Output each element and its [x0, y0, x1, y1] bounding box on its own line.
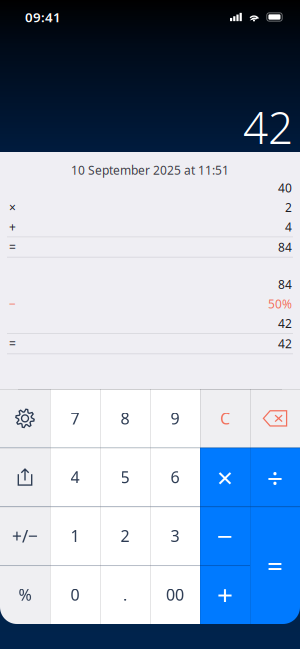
staticText: 4 — [285, 219, 292, 235]
staticText: 09:41 — [25, 8, 61, 26]
button[interactable]: 2 — [100, 506, 150, 565]
button[interactable]: 4 — [50, 448, 100, 507]
button[interactable]: . — [100, 565, 150, 624]
staticText: 8 — [120, 408, 129, 429]
staticText: 5 — [120, 466, 129, 488]
button[interactable]: 9 — [150, 389, 200, 448]
button[interactable]: % — [0, 565, 50, 624]
button[interactable]: + — [200, 565, 250, 624]
staticText: = — [9, 336, 16, 352]
staticText: 9 — [170, 408, 179, 429]
staticText: 84 — [278, 276, 292, 292]
button[interactable]: 5 — [100, 448, 150, 507]
button[interactable]: 00 — [150, 565, 200, 624]
staticText: +/− — [12, 524, 38, 547]
staticText: 4 — [70, 466, 79, 488]
staticText: 42 — [278, 336, 292, 352]
staticText: 0 — [70, 584, 79, 605]
staticText: 40 — [278, 180, 292, 196]
button[interactable]: ÷ — [250, 448, 300, 507]
staticText: 10 September 2025 at 11:51 — [71, 162, 229, 178]
staticText: = — [9, 239, 16, 255]
staticText: 00 — [166, 584, 184, 605]
button[interactable]: = — [250, 506, 300, 624]
staticText: × — [9, 199, 16, 215]
staticText: ÷ — [267, 458, 283, 496]
staticText: 7 — [70, 408, 79, 429]
staticText: % — [18, 584, 31, 605]
button[interactable] — [0, 448, 50, 507]
staticText: − — [9, 296, 16, 312]
staticText: 3 — [170, 525, 179, 546]
button[interactable]: 7 — [50, 389, 100, 448]
staticText: 42 — [243, 98, 293, 156]
button[interactable]: 8 — [100, 389, 150, 448]
staticText: 84 — [278, 239, 292, 255]
staticText: . — [123, 584, 127, 605]
staticText: C — [220, 408, 230, 429]
staticText: 2 — [120, 525, 129, 546]
staticText: 6 — [170, 466, 179, 488]
button[interactable]: × — [200, 448, 250, 507]
staticText: 2 — [285, 199, 292, 215]
button[interactable]: 3 — [150, 506, 200, 565]
staticText: × — [217, 458, 233, 496]
staticText: + — [9, 219, 16, 235]
staticText: 50% — [268, 296, 292, 312]
staticText: + — [217, 576, 233, 613]
staticText: 42 — [278, 315, 292, 331]
button[interactable]: 0 — [50, 565, 100, 624]
button[interactable] — [0, 389, 50, 448]
staticText: 1 — [70, 525, 79, 546]
button[interactable] — [250, 389, 300, 448]
button[interactable]: +/− — [0, 506, 50, 565]
button[interactable]: 1 — [50, 506, 100, 565]
button[interactable]: 6 — [150, 448, 200, 507]
button[interactable]: C — [200, 389, 250, 448]
staticText: − — [217, 517, 233, 554]
button[interactable]: − — [200, 506, 250, 565]
staticText: = — [267, 547, 283, 584]
